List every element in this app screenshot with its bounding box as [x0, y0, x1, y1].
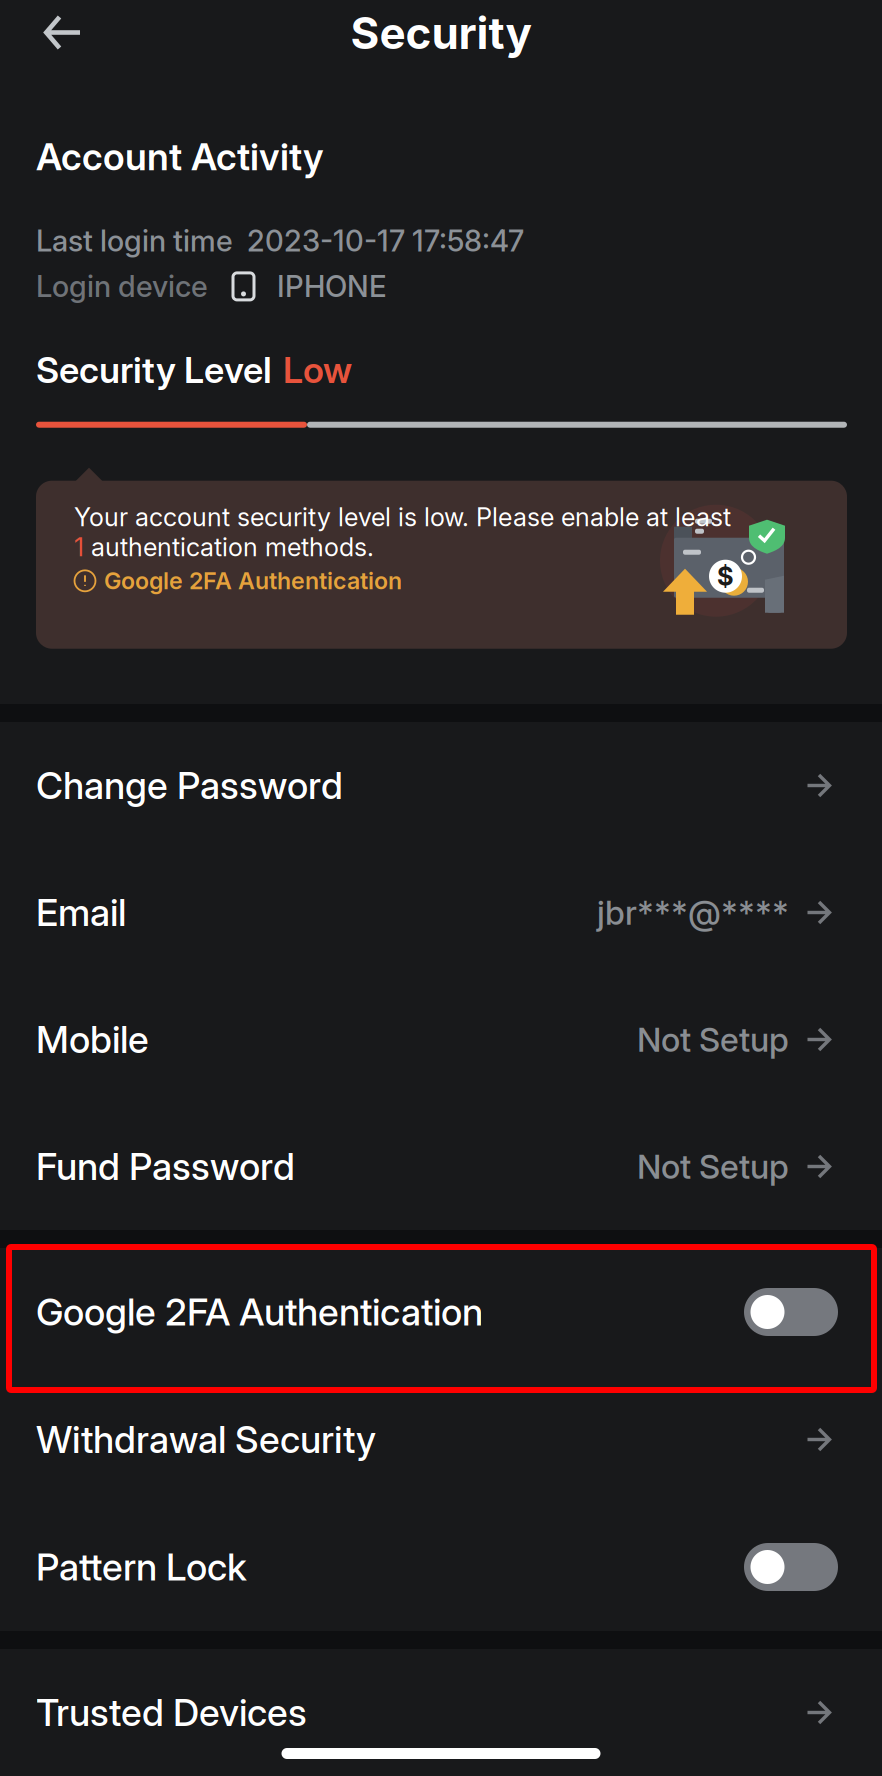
staticText: Low — [283, 348, 352, 392]
staticText: Change Password — [36, 763, 343, 808]
staticText: Pattern Lock — [36, 1544, 247, 1590]
staticText: Last login time 2023-10-17 17:58:47 — [36, 223, 524, 259]
staticText: Account Activity — [36, 134, 324, 179]
button[interactable]: Trusted Devices — [0, 1649, 882, 1776]
staticText: Email — [36, 890, 126, 935]
button[interactable]: Change Password — [0, 722, 882, 849]
staticText: Trusted Devices — [36, 1690, 307, 1735]
staticText: Security Level — [36, 348, 272, 392]
staticText: Not Setup — [637, 1019, 789, 1060]
staticText: Google 2FA Authentication — [104, 567, 402, 595]
staticText: Security — [350, 6, 531, 60]
staticText: IPHONE — [277, 269, 387, 304]
button[interactable]: Back — [0, 0, 108, 66]
staticText: Google 2FA Authentication — [36, 1289, 483, 1335]
button[interactable]: Fund Password — [0, 1103, 882, 1230]
staticText: Login device — [36, 269, 208, 304]
staticText: Mobile — [36, 1017, 149, 1062]
staticText: authentication methods. — [91, 532, 374, 562]
button[interactable]: Email — [0, 849, 882, 976]
button[interactable]: Google 2FA Authentication — [0, 1248, 882, 1376]
button[interactable]: Pattern Lock — [0, 1503, 882, 1631]
staticText: $ — [717, 561, 734, 592]
button[interactable]: Mobile — [0, 976, 882, 1103]
button[interactable]: Withdrawal Security — [0, 1376, 882, 1503]
staticText: 1 — [74, 532, 91, 562]
staticText: Not Setup — [637, 1146, 789, 1187]
staticText: Withdrawal Security — [36, 1417, 376, 1462]
staticText: jbr***@**** — [597, 892, 789, 933]
staticText: Fund Password — [36, 1144, 295, 1189]
staticText: Your account security level is low. Plea… — [74, 502, 731, 532]
